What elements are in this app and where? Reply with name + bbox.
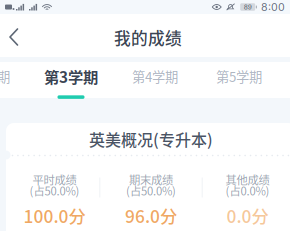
staticText: (占50.0%)	[29, 182, 79, 199]
staticText: 我的成绩	[114, 25, 182, 49]
staticText: 0.0分	[227, 203, 269, 228]
staticText: 89	[244, 3, 252, 11]
staticText: 其他成绩	[226, 171, 270, 188]
staticText: 第5学期	[216, 67, 262, 86]
staticText: (占0.0%)	[226, 182, 270, 199]
staticText: (占50.0%)	[126, 182, 176, 199]
staticText: 8:00	[261, 0, 285, 13]
staticText: 期末成绩	[129, 171, 173, 188]
staticText: 第4学期	[132, 67, 178, 86]
staticText: 第2学期	[0, 67, 10, 86]
button[interactable]: 第3学期	[29, 62, 113, 98]
button[interactable]: 第5学期	[197, 62, 281, 98]
button[interactable]: 第4学期	[113, 62, 197, 98]
button[interactable]: 第2学期	[0, 62, 29, 98]
staticText: 100.0分	[23, 203, 85, 228]
staticText: 96.0分	[125, 203, 177, 228]
staticText: 第3学期	[44, 65, 98, 87]
staticText: 英美概况(专升本)	[89, 127, 213, 151]
staticText: 平时成绩	[32, 171, 76, 188]
button[interactable]: Back	[0, 14, 34, 57]
